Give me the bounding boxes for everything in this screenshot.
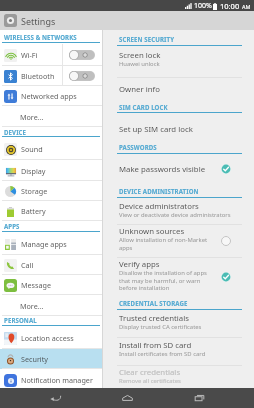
button[interactable]: Set up SIM card lock	[103, 120, 254, 150]
staticText: APPS	[4, 222, 20, 230]
staticText: Install from SD card	[119, 340, 192, 351]
button[interactable]: Screen lock	[103, 46, 254, 78]
staticText: View or deactivate device administrators	[119, 211, 231, 219]
staticText: Verify apps	[119, 259, 160, 270]
staticText: WIRELESS & NETWORKS	[4, 33, 77, 41]
staticText: Message	[21, 280, 102, 290]
staticText: Display trusted CA certificates	[119, 323, 202, 331]
button[interactable]: Bluetooth	[0, 66, 102, 86]
button[interactable]: Trusted credentials	[103, 309, 254, 337]
button[interactable]: Message	[0, 275, 102, 295]
staticText: Make passwords visible	[119, 164, 206, 175]
staticText: Owner info	[119, 84, 160, 95]
staticText: PASSWORDS	[119, 143, 157, 151]
staticText: Sound	[21, 144, 102, 154]
button[interactable]: Install from SD card	[103, 336, 254, 366]
staticText: DEVICE ADMINISTRATION	[119, 187, 199, 195]
staticText: Unknown sources	[119, 226, 185, 237]
button[interactable]: Manage apps	[0, 233, 102, 255]
button[interactable]: Sound	[0, 138, 102, 160]
staticText: Allow installation of non-Market apps	[119, 236, 208, 251]
staticText: CREDENTIAL STORAGE	[119, 299, 188, 307]
button[interactable]: More...	[0, 107, 102, 127]
button[interactable]: Call	[0, 255, 102, 275]
staticText: Device administrators	[119, 201, 199, 212]
button[interactable]: Device administrators	[103, 197, 254, 225]
button[interactable]: Unknown sources	[103, 222, 254, 258]
staticText: DEVICE	[4, 128, 27, 136]
button[interactable]: Networked apps	[0, 86, 102, 106]
button[interactable]: Storage	[0, 181, 102, 201]
button[interactable]: Battery	[0, 201, 102, 221]
button[interactable]: Home	[110, 388, 144, 408]
button[interactable]: Back	[38, 388, 72, 408]
staticText: Disallow the installation of apps that m…	[119, 269, 207, 291]
staticText: 10:00	[220, 1, 242, 11]
staticText: Networked apps	[21, 91, 102, 101]
staticText: SIM CARD LOCK	[119, 103, 168, 111]
staticText: Trusted credentials	[119, 313, 189, 324]
button[interactable]: Notification manager	[0, 370, 102, 390]
button[interactable]: Owner info	[103, 80, 254, 109]
button[interactable]: Clear credentials	[103, 363, 254, 393]
staticText: PERSONAL	[4, 316, 37, 324]
staticText: Battery	[21, 206, 102, 216]
button[interactable]: Display	[0, 161, 102, 181]
button[interactable]: Recent apps	[182, 388, 216, 408]
staticText: Wi-Fi	[21, 50, 62, 60]
staticText: Huawei unlock	[119, 60, 160, 68]
staticText: Clear credentials	[119, 367, 181, 378]
staticText: More...	[20, 301, 102, 311]
staticText: Install certificates from SD card	[119, 350, 206, 358]
staticText: More...	[20, 112, 102, 122]
button[interactable]: More...	[0, 296, 102, 316]
button[interactable]: Location access	[0, 327, 102, 349]
staticText: Display	[21, 166, 102, 176]
staticText: Set up SIM card lock	[119, 124, 193, 135]
staticText: Location access	[21, 333, 102, 343]
staticText: SCREEN SECURITY	[119, 35, 175, 43]
button[interactable]: Make passwords visible	[103, 160, 254, 190]
staticText: AM	[242, 3, 251, 10]
staticText: Settings	[21, 15, 56, 27]
staticText: Bluetooth	[21, 71, 62, 81]
button[interactable]: Verify apps	[103, 255, 254, 285]
staticText: 100%	[194, 1, 212, 11]
staticText: Call	[21, 260, 102, 270]
staticText: Notification manager	[21, 375, 102, 385]
staticText: Remove all certificates	[119, 377, 181, 385]
staticText: Security	[21, 354, 102, 364]
staticText: Manage apps	[21, 239, 102, 249]
staticText: Screen lock	[119, 50, 161, 61]
staticText: Storage	[21, 186, 102, 196]
button[interactable]: Security	[0, 349, 102, 369]
button[interactable]: Wi-Fi	[0, 44, 102, 66]
